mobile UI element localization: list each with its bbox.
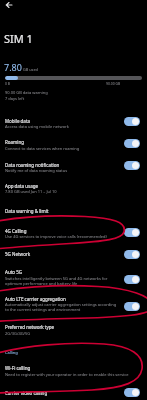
staticText: 4G Calling [5,228,27,234]
staticText: Use 4G services to improve voice calls (… [5,234,107,239]
button[interactable]: Toggle switch [124,388,140,397]
button[interactable]: Toggle switch [124,228,140,237]
staticText: Access data using mobile network [5,124,69,129]
staticText: 0 B [5,81,11,86]
button[interactable] [0,133,147,155]
button[interactable]: Toggle switch [124,139,140,148]
staticText: Roaming [5,139,24,145]
button[interactable] [0,264,147,291]
staticText: 7.80 GB used Jun 11 – Jul 10 [5,189,57,194]
staticText: Wi-Fi calling [5,365,31,371]
staticText: Auto 5G [5,269,23,275]
staticText: Need to register with your operator in o… [5,372,129,377]
staticText: Data warning & limit [5,208,49,214]
staticText: 2G/3G/4G/5G [5,331,31,336]
button[interactable] [0,155,147,177]
staticText: Automatically adjust carrier aggregation… [5,302,120,313]
staticText: Mobile data [5,118,31,124]
staticText: Auto LTE carrier aggregation [5,296,66,302]
button[interactable] [0,245,147,263]
button[interactable] [0,111,147,133]
staticText: 90.00 GB data warning [5,90,48,95]
staticText: SIM 1 [4,31,33,46]
staticText: Preferred network type [5,324,55,330]
button[interactable] [0,384,147,400]
staticText: 7.80 [4,61,22,73]
staticText: 5G Network [5,251,31,257]
button[interactable] [0,201,147,218]
staticText: 90.00 GB [106,81,121,86]
button[interactable]: Toggle switch [124,117,140,126]
staticText: Connect to data services when roaming [5,146,80,151]
staticText: 7 days left [5,96,25,101]
button[interactable] [0,360,147,382]
staticText: Notify me of data roaming status [5,168,68,173]
button[interactable]: Toggle switch [124,275,140,284]
staticText: Carrier video calling [5,390,48,396]
staticText: Data roaming notification [5,162,60,168]
staticText: Switches intelligently between 5G and 4G… [5,276,120,287]
button[interactable]: Toggle switch [124,302,140,311]
staticText: App data usage [5,183,38,189]
button[interactable] [0,291,147,318]
button[interactable] [0,221,147,243]
button[interactable] [0,177,147,199]
button[interactable]: Toggle switch [124,161,140,170]
button[interactable]: Toggle switch [124,250,140,259]
button[interactable] [0,319,147,340]
staticText: GB used [23,67,38,72]
staticText: Calling [5,350,18,355]
button[interactable]: Back [3,0,15,11]
